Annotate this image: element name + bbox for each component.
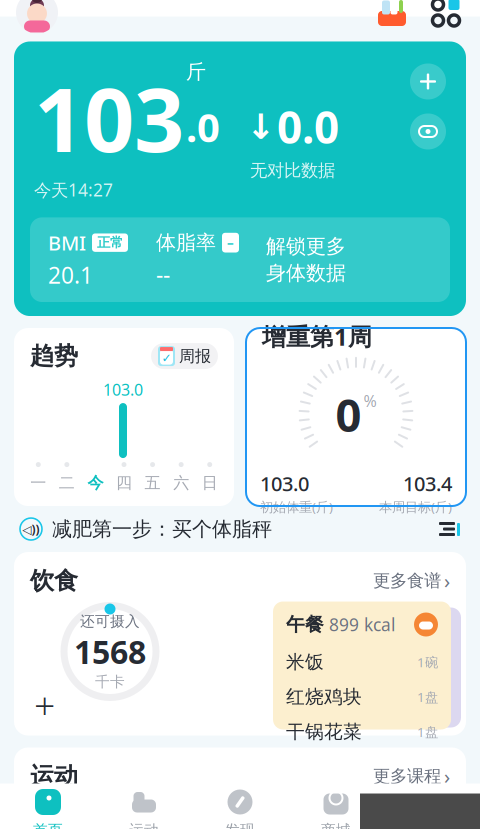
staticText: 正常 (97, 234, 123, 251)
button[interactable]: ◁)) (0, 506, 480, 552)
button[interactable]: 商城 (288, 782, 384, 829)
staticText: 还可摄入 (80, 612, 140, 630)
staticText: 运动 (129, 821, 159, 829)
staticText: % (363, 390, 376, 411)
staticText: 899 kcal (324, 613, 395, 636)
staticText: 首页 (33, 821, 63, 829)
staticText: ✓ (161, 351, 171, 365)
button[interactable]: 运动 (96, 782, 192, 829)
staticText: 更多食谱 (373, 570, 441, 591)
staticText: 趋势 (30, 341, 78, 371)
button[interactable]: 发现 (192, 782, 288, 829)
button[interactable]: Shop (374, 0, 410, 30)
staticText: 本周目标(斤) (379, 498, 452, 516)
staticText: 103.4 (403, 470, 452, 497)
staticText: 1568 (74, 630, 146, 673)
button[interactable]: Profile (16, 0, 58, 33)
staticText: 发现 (225, 821, 255, 829)
staticText: 运动 (30, 761, 78, 791)
staticText: + (34, 680, 55, 729)
staticText: 0.0 (277, 97, 339, 156)
staticText: 商城 (321, 821, 351, 829)
staticText: 103.0 (260, 470, 309, 497)
staticText: 米饭 (286, 650, 324, 673)
staticText: 午餐 (286, 613, 324, 636)
staticText: › (444, 567, 450, 594)
staticText: 初始体重(斤) (260, 498, 333, 516)
staticText: ↓ (246, 107, 275, 146)
staticText: 日 (202, 473, 218, 493)
button[interactable]: 首页 (0, 782, 96, 829)
button[interactable]: 增重第1周 (246, 328, 466, 506)
staticText: BMI (48, 229, 86, 256)
button[interactable]: 更多食谱 (373, 567, 450, 594)
button[interactable]: 更多课程 (373, 763, 450, 790)
staticText: .0 (186, 100, 220, 153)
staticText: 一 (30, 473, 46, 493)
staticText: 今 (87, 473, 103, 493)
staticText: 103.0 (103, 379, 143, 400)
staticText: 红烧鸡块 (286, 685, 362, 708)
staticText: 0 (335, 384, 361, 444)
staticText: 20.1 (48, 260, 93, 290)
button[interactable]: 解锁更多 (266, 234, 424, 285)
staticText: -- (156, 259, 170, 289)
button[interactable]: + (34, 685, 78, 723)
button[interactable]: More (428, 0, 464, 30)
staticText: 二 (59, 473, 75, 493)
button[interactable]: Add (410, 63, 446, 99)
staticText: 体脂率 (156, 230, 216, 255)
staticText: 解锁更多 (266, 234, 346, 259)
staticText: 六 (173, 473, 189, 493)
staticText: 周报 (179, 346, 211, 366)
staticText: 千卡 (95, 673, 125, 691)
staticText: 1碗 (417, 653, 438, 671)
staticText: 无对比数据 (250, 160, 335, 181)
staticText: › (444, 763, 450, 790)
staticText: 斤 (186, 59, 206, 84)
staticText: ◁)) (22, 521, 39, 537)
staticText: 1盘 (417, 723, 438, 741)
staticText: 身体数据 (266, 261, 346, 285)
staticText: 减肥第一步：买个体脂秤 (52, 517, 272, 541)
button[interactable]: Toggle visibility (410, 113, 446, 149)
staticText: 干锅花菜 (286, 720, 362, 743)
staticText: 103 (34, 59, 184, 176)
button[interactable]: 趋势 (14, 328, 234, 506)
staticText: 四 (116, 473, 132, 493)
staticText: 增重第1周 (262, 320, 372, 352)
staticText: – (227, 234, 234, 251)
staticText: 五 (145, 473, 161, 493)
staticText: 1盘 (417, 688, 438, 706)
staticText: 饮食 (30, 566, 78, 595)
staticText: 更多课程 (373, 766, 441, 787)
staticText: 今天14:27 (34, 178, 113, 201)
